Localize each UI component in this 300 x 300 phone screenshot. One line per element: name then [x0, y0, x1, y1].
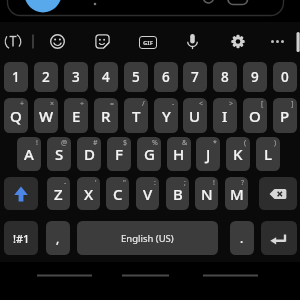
button[interactable]: [ — [243, 98, 267, 133]
staticText: [ — [261, 99, 264, 109]
staticText: Z — [54, 184, 63, 204]
staticText: N — [201, 184, 213, 204]
staticText: 2 — [42, 68, 50, 86]
staticText: I — [222, 106, 228, 126]
staticText: K — [233, 144, 243, 164]
staticText: C — [113, 184, 123, 204]
staticText: ; — [184, 178, 186, 188]
staticText: E — [72, 106, 81, 126]
button[interactable]: 9 — [243, 62, 267, 92]
button[interactable]: = — [94, 98, 118, 133]
staticText: F — [115, 144, 123, 164]
staticText: * — [213, 138, 217, 148]
staticText: - — [64, 178, 67, 188]
staticText: < — [199, 99, 204, 109]
staticText: $ — [123, 138, 128, 148]
button[interactable]: # — [77, 137, 101, 171]
staticText: ! — [36, 138, 38, 148]
staticText: / — [142, 99, 145, 109]
button[interactable]: / — [124, 98, 148, 133]
button[interactable]: - — [47, 177, 70, 210]
button[interactable]: & — [167, 137, 191, 171]
button[interactable]: ) — [256, 137, 280, 171]
staticText: - — [172, 99, 175, 109]
button[interactable]: @ — [47, 137, 71, 171]
button[interactable]: < — [183, 98, 207, 133]
button[interactable]: ] — [273, 98, 297, 133]
button[interactable]: : — [136, 177, 159, 210]
staticText: ? — [241, 178, 245, 188]
button[interactable]: 8 — [213, 62, 237, 92]
button[interactable]: - — [154, 98, 178, 133]
button[interactable]: ÷ — [64, 98, 88, 133]
staticText: R — [101, 106, 111, 126]
button[interactable]: × — [34, 98, 58, 133]
button[interactable]: 7 — [183, 62, 207, 92]
staticText: × — [50, 99, 55, 109]
button[interactable]: . — [230, 221, 254, 255]
button[interactable]: * — [196, 137, 220, 171]
staticText: 5 — [132, 68, 140, 86]
button[interactable] — [259, 177, 297, 210]
staticText: 8 — [221, 68, 229, 86]
staticText: A — [24, 144, 34, 164]
button[interactable]: " — [106, 177, 129, 210]
staticText: > — [229, 99, 234, 109]
staticText: 6 — [162, 68, 170, 86]
button[interactable]: $ — [107, 137, 131, 171]
staticText: B — [173, 184, 183, 204]
staticText: ] — [291, 99, 294, 109]
button[interactable]: 1 — [4, 62, 28, 92]
staticText: P — [280, 106, 290, 126]
button[interactable]: !#1 — [4, 221, 38, 255]
staticText: ! — [213, 178, 215, 188]
button[interactable]: ! — [195, 177, 218, 210]
button[interactable]: ; — [166, 177, 189, 210]
button[interactable]: 4 — [94, 62, 118, 92]
staticText: 9 — [251, 68, 259, 86]
staticText: = — [110, 99, 115, 109]
staticText: English (US) — [121, 232, 174, 245]
button[interactable] — [92, 30, 114, 52]
staticText: ÷ — [80, 99, 85, 109]
button[interactable]: > — [213, 98, 237, 133]
staticText: Y — [162, 106, 171, 126]
staticText: M — [230, 184, 244, 204]
button[interactable] — [2, 30, 24, 52]
button[interactable] — [47, 30, 69, 52]
staticText: V — [143, 184, 153, 204]
staticText: !#1 — [13, 231, 30, 246]
button[interactable]: 6 — [154, 62, 178, 92]
button[interactable]: 3 — [64, 62, 88, 92]
staticText: G — [144, 144, 155, 164]
button[interactable] — [227, 30, 249, 52]
button[interactable]: 5 — [124, 62, 148, 92]
staticText: J — [206, 144, 211, 164]
staticText: & — [182, 138, 188, 148]
staticText: 4 — [102, 68, 110, 86]
staticText: S — [55, 144, 64, 164]
button[interactable]: ( — [226, 137, 250, 171]
button[interactable]: 2 — [34, 62, 58, 92]
button[interactable] — [182, 30, 204, 52]
staticText: U — [189, 106, 201, 126]
button[interactable] — [267, 30, 289, 52]
button[interactable]: + — [4, 98, 28, 133]
button[interactable]: English (US) — [77, 221, 218, 255]
button[interactable] — [261, 221, 297, 255]
staticText: X — [84, 184, 94, 204]
button[interactable]: ' — [77, 177, 100, 210]
staticText: 3 — [72, 68, 80, 86]
staticText: 1 — [12, 68, 20, 86]
button[interactable] — [4, 177, 38, 210]
staticText: , — [56, 230, 60, 246]
button[interactable] — [137, 30, 159, 52]
staticText: + — [20, 99, 25, 109]
button[interactable]: ! — [17, 137, 41, 171]
button[interactable]: ? — [225, 177, 248, 210]
button[interactable]: , — [46, 221, 70, 255]
staticText: Q — [10, 106, 22, 126]
button[interactable]: 0 — [273, 62, 297, 92]
staticText: " — [123, 178, 126, 188]
button[interactable]: % — [137, 137, 161, 171]
